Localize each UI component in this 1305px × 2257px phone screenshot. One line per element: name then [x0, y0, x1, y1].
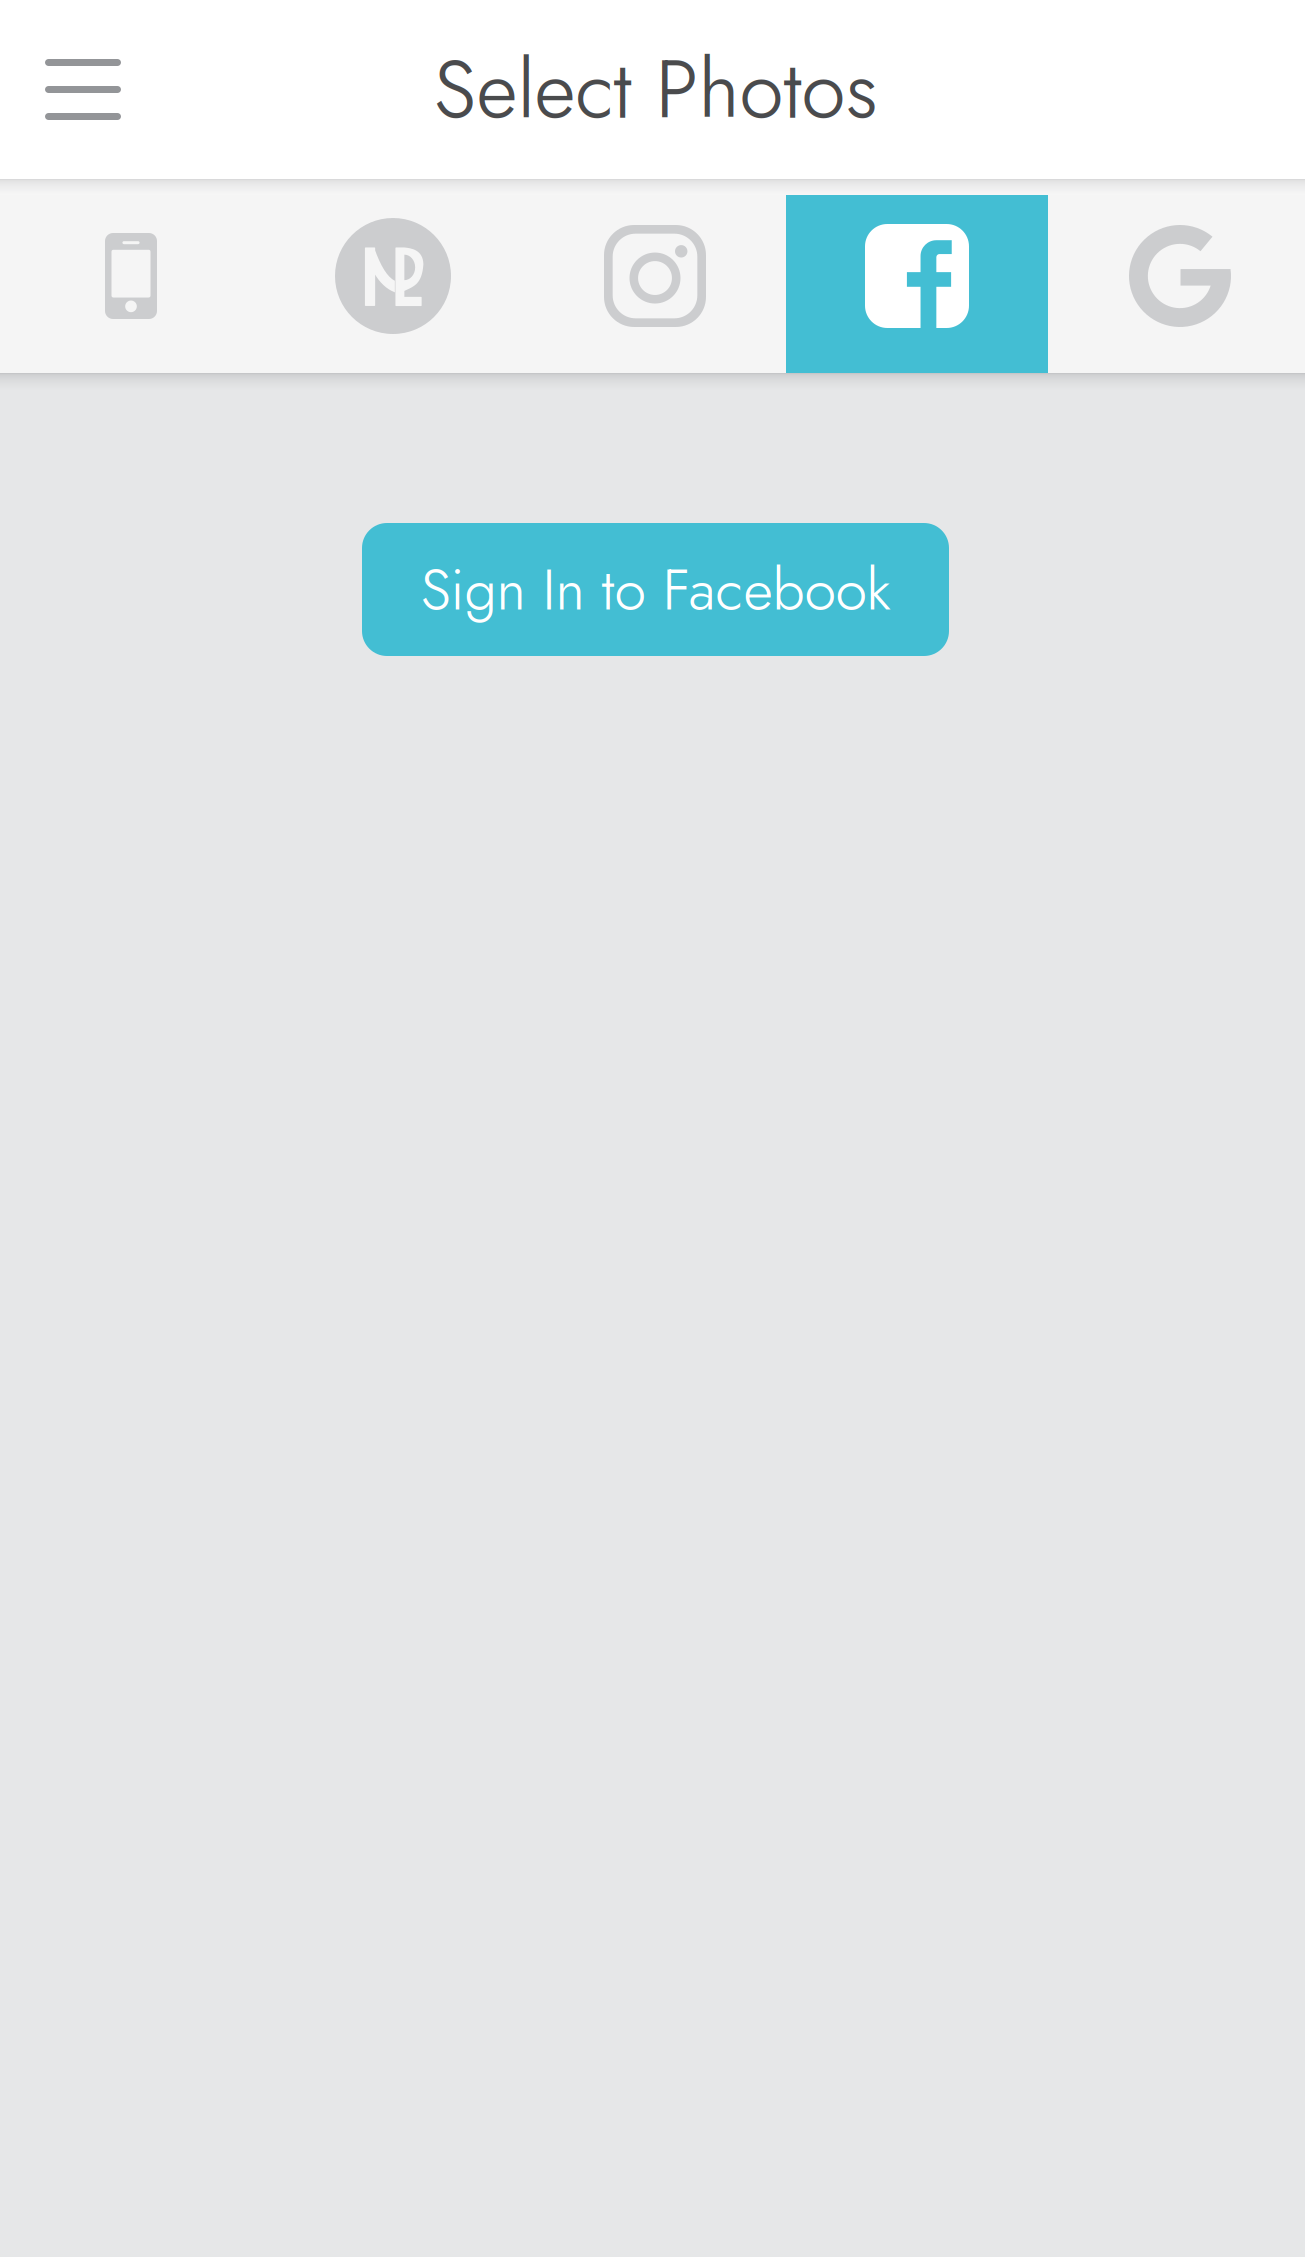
button[interactable]: My Library [262, 179, 524, 373]
staticText: Sign In to Facebook [420, 548, 890, 631]
button[interactable]: Instagram [524, 179, 786, 373]
button[interactable]: Sign In to Facebook [362, 523, 949, 656]
button[interactable]: Facebook [786, 179, 1048, 373]
button[interactable]: Menu [0, 0, 166, 179]
button[interactable]: Google Photos [1048, 179, 1305, 373]
staticText: Select Photos [433, 32, 877, 147]
button[interactable]: Photo Library [0, 179, 262, 373]
